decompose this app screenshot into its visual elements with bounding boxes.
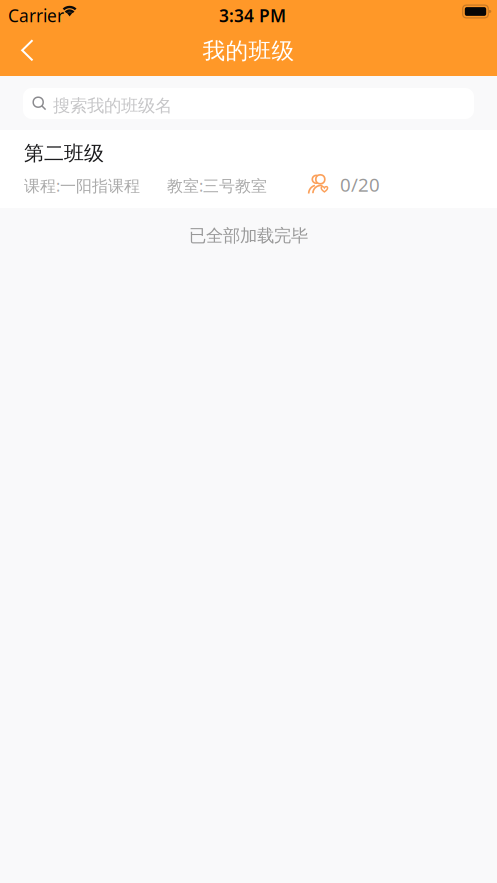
staticText: 3:34 PM [219, 4, 286, 27]
staticText: 教室:三号教室 [167, 175, 267, 196]
button[interactable]: Back [0, 26, 54, 76]
staticText: 课程:一阳指课程 [24, 175, 140, 196]
staticText: 0/20 [340, 172, 380, 197]
staticText: 第二班级 [24, 141, 104, 166]
staticText: 搜索我的班级名 [53, 95, 172, 116]
staticText: Carrier [8, 4, 64, 27]
staticText: 已全部加载完毕 [189, 225, 308, 246]
staticText: 我的班级 [202, 37, 294, 65]
button[interactable]: 搜索我的班级名 [23, 88, 474, 119]
button[interactable]: 第二班级 [0, 130, 497, 208]
